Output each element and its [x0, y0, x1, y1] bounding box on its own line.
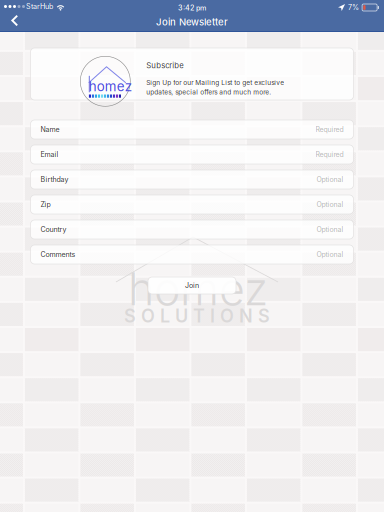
staticText: Required — [315, 125, 343, 134]
staticText: Country — [40, 225, 66, 234]
staticText: Optional — [316, 175, 343, 184]
staticText: Comments — [40, 250, 75, 259]
staticText: Name — [40, 125, 59, 134]
button[interactable]: Birthday — [30, 170, 353, 189]
staticText: StarHub — [26, 2, 53, 11]
staticText: 3:42 pm — [178, 4, 206, 12]
button[interactable]: Name — [30, 120, 353, 139]
staticText: Sign Up for our Mailing List to get excl… — [146, 79, 284, 86]
staticText: updates, special offers and much more. — [146, 88, 271, 96]
staticText: Subscribe — [146, 61, 184, 70]
staticText: Join — [185, 281, 199, 290]
button[interactable]: Join — [148, 277, 236, 294]
staticText: Optional — [316, 225, 343, 234]
staticText: Email — [40, 150, 58, 159]
button[interactable]: Back — [4, 12, 30, 32]
staticText: homez — [128, 262, 268, 316]
staticText: S O L U T I O N S — [124, 305, 270, 327]
staticText: Birthday — [40, 175, 68, 184]
button[interactable]: Comments — [30, 245, 353, 264]
staticText: 7% — [348, 3, 359, 12]
staticText: homez — [89, 78, 132, 94]
staticText: Optional — [316, 200, 343, 209]
staticText: Required — [315, 150, 343, 159]
button[interactable]: Email — [30, 145, 353, 164]
button[interactable]: Zip — [30, 195, 353, 214]
staticText: Optional — [316, 250, 343, 259]
staticText: Zip — [40, 200, 50, 209]
button[interactable]: Country — [30, 220, 353, 239]
staticText: Join Newsletter — [156, 16, 228, 28]
